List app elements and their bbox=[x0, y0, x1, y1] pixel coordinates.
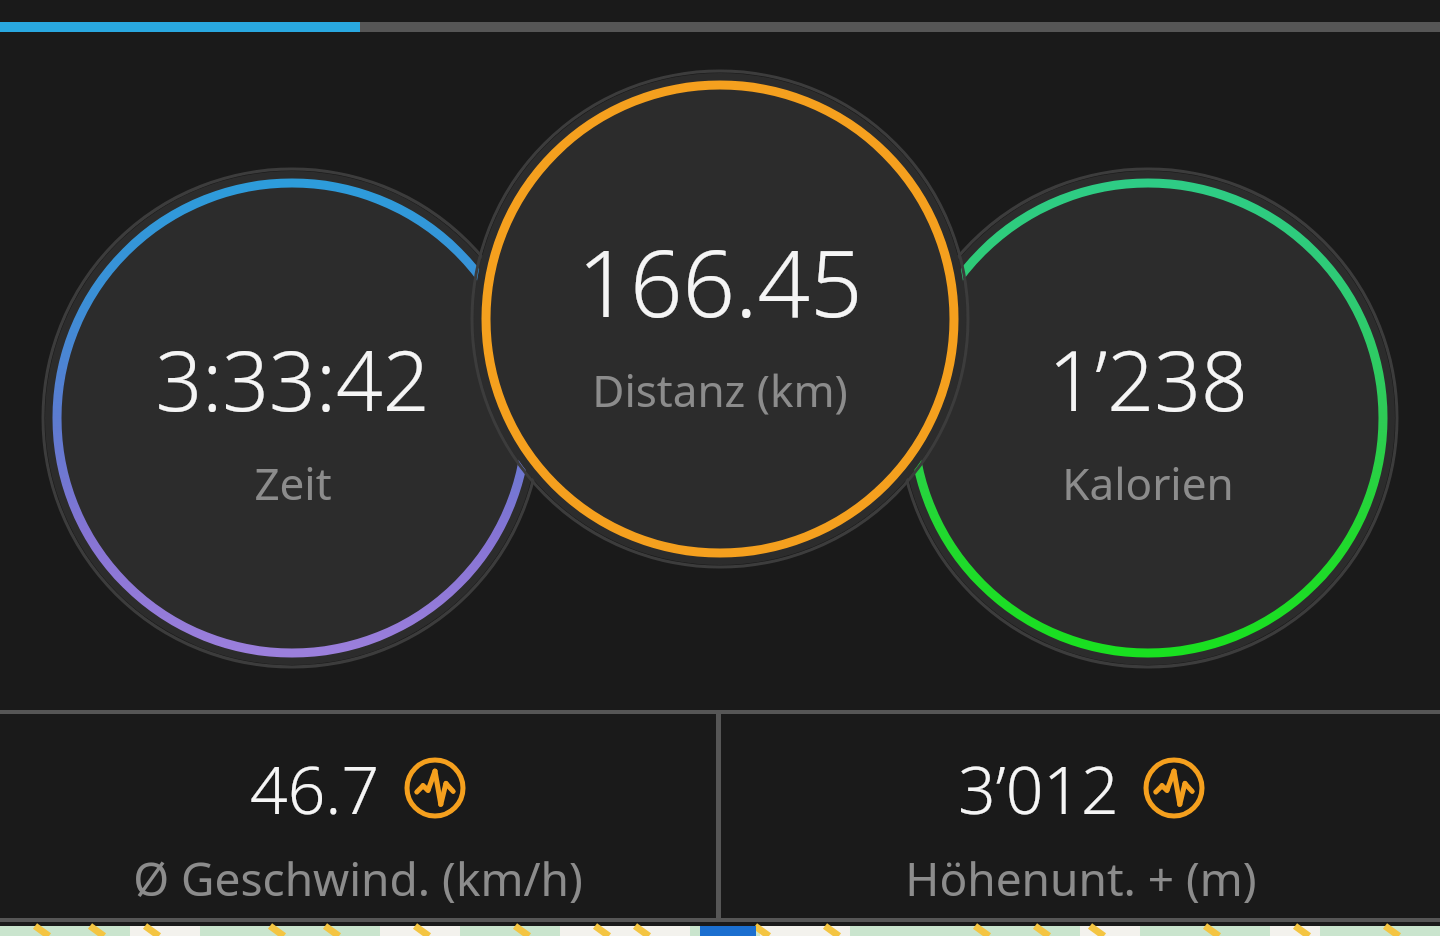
staticText: Zeit bbox=[254, 453, 332, 513]
staticText: Ø Geschwind. (km/h) bbox=[133, 847, 583, 910]
button[interactable]: 166.45 bbox=[486, 85, 954, 553]
button[interactable]: 3:33:42 bbox=[57, 183, 527, 653]
other: Activity graph bbox=[404, 757, 466, 819]
button[interactable]: 1’238 bbox=[913, 183, 1383, 653]
button[interactable]: 3’012 bbox=[721, 710, 1440, 922]
staticText: 3:33:42 bbox=[155, 323, 430, 435]
staticText: Höhenunt. + (m) bbox=[905, 847, 1257, 910]
staticText: Kalorien bbox=[1062, 453, 1234, 513]
button[interactable]: 46.7 bbox=[0, 710, 716, 922]
staticText: 3’012 bbox=[958, 743, 1119, 833]
staticText: Distanz (km) bbox=[592, 360, 848, 420]
staticText: 166.45 bbox=[577, 219, 863, 344]
staticText: 1’238 bbox=[1048, 323, 1248, 435]
other: Activity graph bbox=[1143, 757, 1205, 819]
staticText: 46.7 bbox=[250, 743, 380, 833]
